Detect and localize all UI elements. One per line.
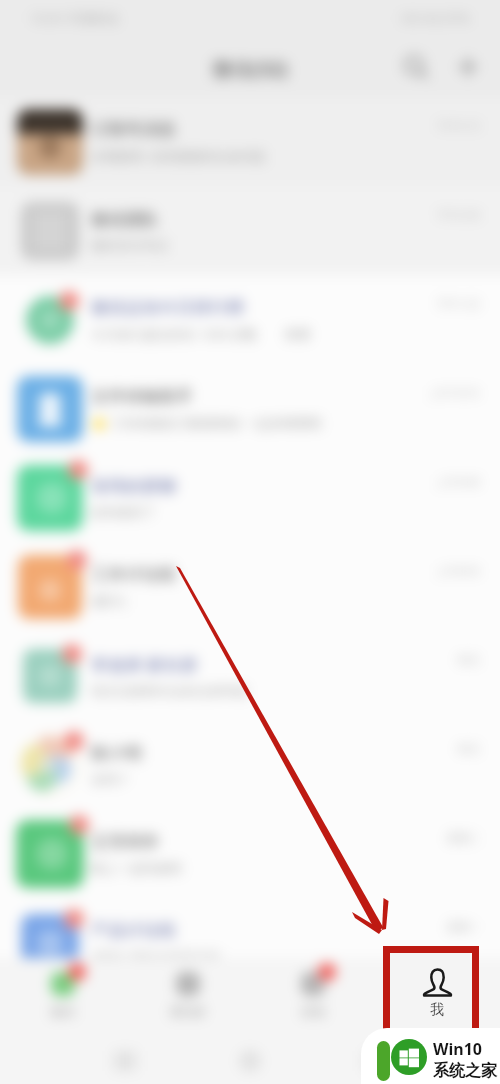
staticText: 在吗？	[91, 771, 130, 787]
button[interactable]: 陈小明	[0, 720, 500, 809]
button[interactable]: 产品讨论组	[0, 898, 500, 987]
button[interactable]: Add	[450, 49, 486, 85]
staticText: 张伟的群聊	[91, 476, 176, 497]
button[interactable]: 订阅号消息	[0, 97, 500, 186]
staticText: [图片]	[91, 592, 126, 610]
staticText: 工作讨论组	[91, 564, 176, 585]
staticText: 产品讨论组	[91, 920, 176, 941]
staticText: 星期一	[447, 920, 480, 934]
staticText: 微信(32)	[212, 55, 288, 82]
button[interactable]: 工作讨论组	[0, 542, 500, 631]
staticText: 李老师 家长群	[91, 653, 198, 676]
staticText: 陈小明	[91, 743, 142, 764]
button[interactable]: 发现	[250, 968, 375, 1019]
staticText: 晚上一起吃饭吧	[91, 860, 182, 876]
staticText: 好的收到了	[91, 504, 156, 520]
staticText: 我	[430, 1001, 444, 1019]
button[interactable]: 王芳同学	[0, 809, 500, 898]
staticText: 明天记得带作业本过来学校	[91, 683, 247, 699]
button[interactable]: 微信运动今日排行榜	[0, 275, 500, 364]
button[interactable]: 通讯录	[125, 968, 250, 1019]
button[interactable]: 我	[375, 968, 500, 1019]
staticText: 订阅号消息	[91, 119, 176, 140]
button[interactable]: 文件传输助手	[0, 364, 500, 453]
staticText: 王芳同学	[91, 832, 159, 853]
staticText: 今天你已超过好友 1200 步数 查看	[91, 325, 311, 343]
staticText: Win10	[433, 1038, 482, 1060]
staticText: ⭐ 工作的报告方案请查收 一起来看看吧	[91, 414, 322, 432]
button[interactable]: 我 Me tab	[388, 951, 470, 1029]
staticText: 系统之家	[433, 1061, 497, 1081]
staticText: 星期二	[447, 831, 480, 845]
staticText: 微信运动今日排行榜	[91, 297, 244, 318]
button[interactable]: 李老师 家长群	[0, 631, 500, 720]
button[interactable]: 微信团队	[0, 186, 500, 275]
button[interactable]: Search	[398, 49, 434, 85]
button[interactable]: 微信	[0, 968, 125, 1019]
button[interactable]: 张伟的群聊	[0, 453, 500, 542]
staticText: 我	[432, 1004, 444, 1019]
staticText: 文件传输助手	[91, 386, 193, 407]
staticText: 微信团队	[91, 209, 159, 230]
